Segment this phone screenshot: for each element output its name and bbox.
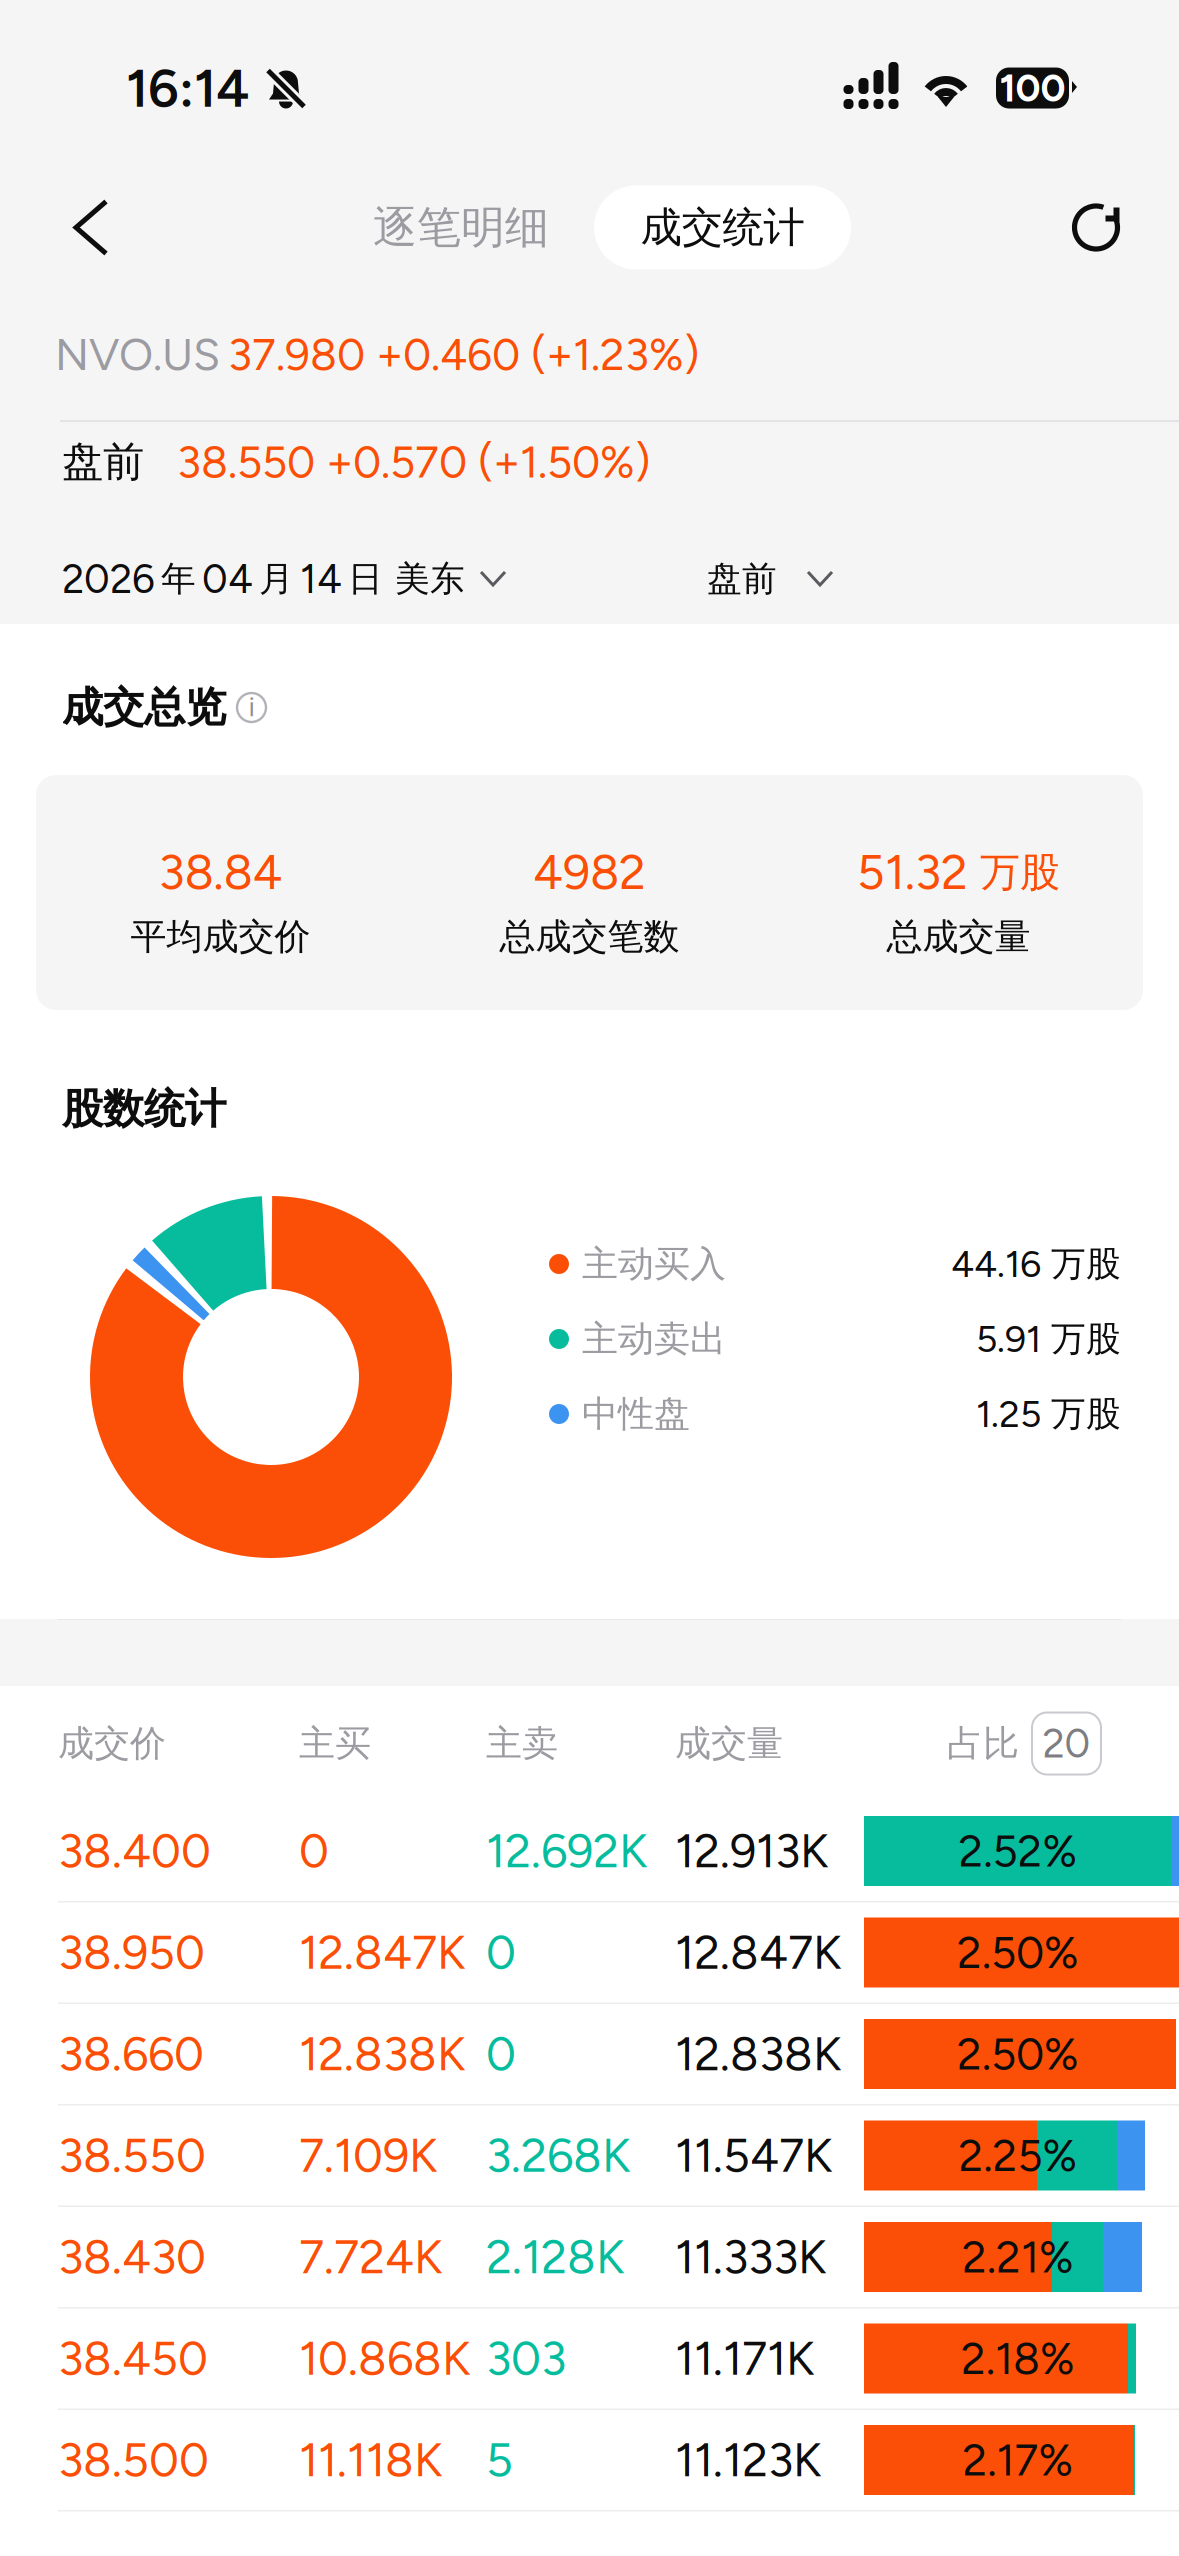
- staticText: 12.838K: [675, 2026, 841, 2082]
- staticText: 年: [161, 557, 196, 601]
- staticText: 2.50%: [957, 1926, 1079, 1979]
- staticText: 主卖: [486, 1721, 558, 1766]
- staticText: NVO.US: [55, 328, 220, 381]
- staticText: 4982: [533, 843, 646, 901]
- button[interactable]: 2026: [62, 535, 507, 623]
- staticText: 11.123K: [675, 2432, 821, 2488]
- staticText: 主买: [299, 1721, 371, 1766]
- staticText: 成交量: [675, 1721, 783, 1766]
- staticText: 11.171K: [675, 2330, 814, 2386]
- staticText: 5: [486, 2432, 513, 2488]
- staticText: 44.16: [951, 1242, 1041, 1286]
- staticText: 5.91: [976, 1317, 1041, 1361]
- staticText: 12.692K: [486, 1823, 647, 1879]
- staticText: 2.18%: [961, 2332, 1075, 2385]
- staticText: 38.84: [158, 843, 282, 901]
- staticText: 38.400: [58, 1823, 211, 1879]
- staticText: 2026: [62, 555, 155, 603]
- staticText: 38.450: [58, 2330, 208, 2386]
- staticText: 万股: [968, 847, 1060, 897]
- button[interactable]: Back: [70, 172, 158, 282]
- staticText: 38.430: [58, 2229, 206, 2285]
- button[interactable]: 盘前: [707, 535, 834, 623]
- staticText: 主动卖出: [582, 1316, 726, 1362]
- staticText: 38.550: [58, 2127, 206, 2183]
- staticText: 主动买入: [582, 1241, 726, 1287]
- staticText: 11.118K: [299, 2432, 442, 2488]
- staticText: 0: [486, 1924, 516, 1980]
- button[interactable]: 38.550: [0, 2105, 1179, 2205]
- staticText: 14: [300, 555, 342, 603]
- staticText: 平均成交价: [130, 914, 310, 959]
- staticText: 总成交量: [886, 914, 1030, 959]
- staticText: 总成交笔数: [499, 914, 679, 959]
- staticText: 2.25%: [958, 2129, 1077, 2182]
- button[interactable]: 38.430: [0, 2207, 1179, 2307]
- staticText: 100: [999, 65, 1065, 111]
- staticText: 38.500: [58, 2432, 209, 2488]
- staticText: 12.847K: [675, 1924, 841, 1980]
- staticText: 7.724K: [299, 2229, 442, 2285]
- staticText: 3.268K: [486, 2127, 630, 2183]
- staticText: 盘前: [62, 436, 144, 488]
- staticText: 11.547K: [675, 2127, 832, 2183]
- staticText: 0: [486, 2026, 516, 2082]
- staticText: 中性盘: [582, 1391, 690, 1437]
- staticText: 20: [1042, 1719, 1090, 1767]
- staticText: 2.50%: [957, 2028, 1079, 2080]
- staticText: 美东: [395, 557, 465, 601]
- staticText: 38.550 +0.570 (+1.50%): [144, 436, 650, 488]
- button[interactable]: 成交统计: [549, 185, 851, 269]
- button[interactable]: 38.950: [0, 1902, 1179, 2002]
- staticText: 7.109K: [299, 2127, 437, 2183]
- staticText: 占比: [947, 1721, 1019, 1766]
- staticText: 成交价: [58, 1721, 166, 1766]
- staticText: 0: [299, 1823, 329, 1879]
- button[interactable]: 38.400: [0, 1801, 1179, 1901]
- button[interactable]: 20: [1019, 1712, 1101, 1774]
- staticText: 2.17%: [962, 2434, 1073, 2486]
- button[interactable]: 38.500: [0, 2410, 1179, 2510]
- staticText: 2.21%: [962, 2231, 1074, 2283]
- button[interactable]: 逐笔明细: [342, 172, 549, 282]
- staticText: 2.128K: [486, 2229, 624, 2285]
- staticText: 16:14: [126, 56, 249, 120]
- staticText: 12.838K: [299, 2026, 465, 2082]
- staticText: 逐笔明细: [373, 200, 549, 255]
- staticText: 12.847K: [299, 1924, 465, 1980]
- staticText: 303: [486, 2330, 566, 2386]
- staticText: 股数统计: [62, 1083, 226, 1135]
- staticText: 成交总览: [62, 681, 226, 734]
- staticText: 37.980 +0.460 (+1.23%): [228, 328, 699, 381]
- staticText: 月: [259, 557, 294, 601]
- staticText: 12.913K: [675, 1823, 828, 1879]
- staticText: 51.32: [857, 843, 968, 901]
- staticText: 11.333K: [675, 2229, 826, 2285]
- staticText: 38.950: [58, 1924, 205, 1980]
- staticText: 10.868K: [299, 2330, 470, 2386]
- staticText: 成交统计: [640, 201, 804, 254]
- staticText: 38.660: [58, 2026, 204, 2082]
- staticText: 1.25: [976, 1392, 1041, 1436]
- staticText: 日: [348, 557, 383, 601]
- staticText: 万股: [1041, 1392, 1121, 1436]
- staticText: 万股: [1041, 1317, 1121, 1361]
- staticText: i: [248, 690, 254, 723]
- button[interactable]: Refresh: [1035, 172, 1120, 282]
- button[interactable]: 38.450: [0, 2308, 1179, 2408]
- staticText: 04: [202, 555, 253, 603]
- staticText: 万股: [1041, 1242, 1121, 1286]
- button[interactable]: 38.660: [0, 2004, 1179, 2104]
- staticText: 盘前: [707, 557, 777, 601]
- staticText: 2.52%: [958, 1825, 1077, 1877]
